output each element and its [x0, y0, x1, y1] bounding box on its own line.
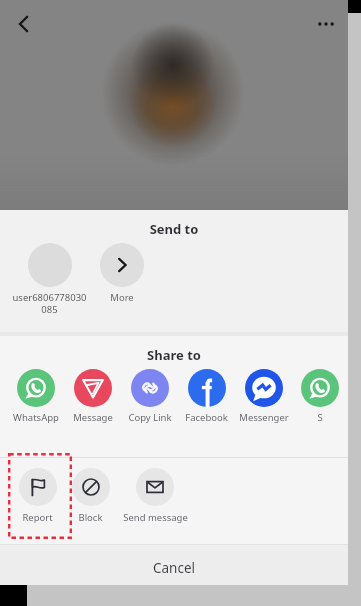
- button[interactable]: More options: [308, 6, 344, 42]
- button[interactable]: Message: [64, 369, 121, 424]
- staticText: More: [110, 291, 134, 304]
- button[interactable]: More: [88, 243, 155, 304]
- button[interactable]: Block: [64, 468, 117, 524]
- button[interactable]: Report: [11, 468, 64, 524]
- button[interactable]: S: [292, 369, 348, 424]
- button[interactable]: user6806778030085: [11, 243, 88, 316]
- staticText: Facebook: [185, 411, 228, 424]
- staticText: user6806778030085: [11, 291, 88, 316]
- staticText: Send to: [0, 220, 348, 238]
- button[interactable]: Cancel: [0, 551, 348, 585]
- staticText: Share to: [0, 346, 348, 364]
- staticText: Block: [78, 511, 103, 524]
- button[interactable]: Messenger: [235, 369, 292, 424]
- staticText: Cancel: [153, 559, 196, 577]
- staticText: Send message: [123, 511, 188, 524]
- button[interactable]: Send message: [117, 468, 193, 524]
- button[interactable]: Back: [6, 6, 42, 42]
- staticText: Messenger: [239, 411, 289, 424]
- button[interactable]: Copy Link: [121, 369, 178, 424]
- staticText: S: [317, 411, 323, 424]
- staticText: Copy Link: [128, 411, 172, 424]
- button[interactable]: WhatsApp: [7, 369, 64, 424]
- staticText: Message: [73, 411, 113, 424]
- staticText: Report: [22, 511, 53, 524]
- button[interactable]: Facebook: [178, 369, 235, 424]
- staticText: WhatsApp: [13, 411, 59, 424]
